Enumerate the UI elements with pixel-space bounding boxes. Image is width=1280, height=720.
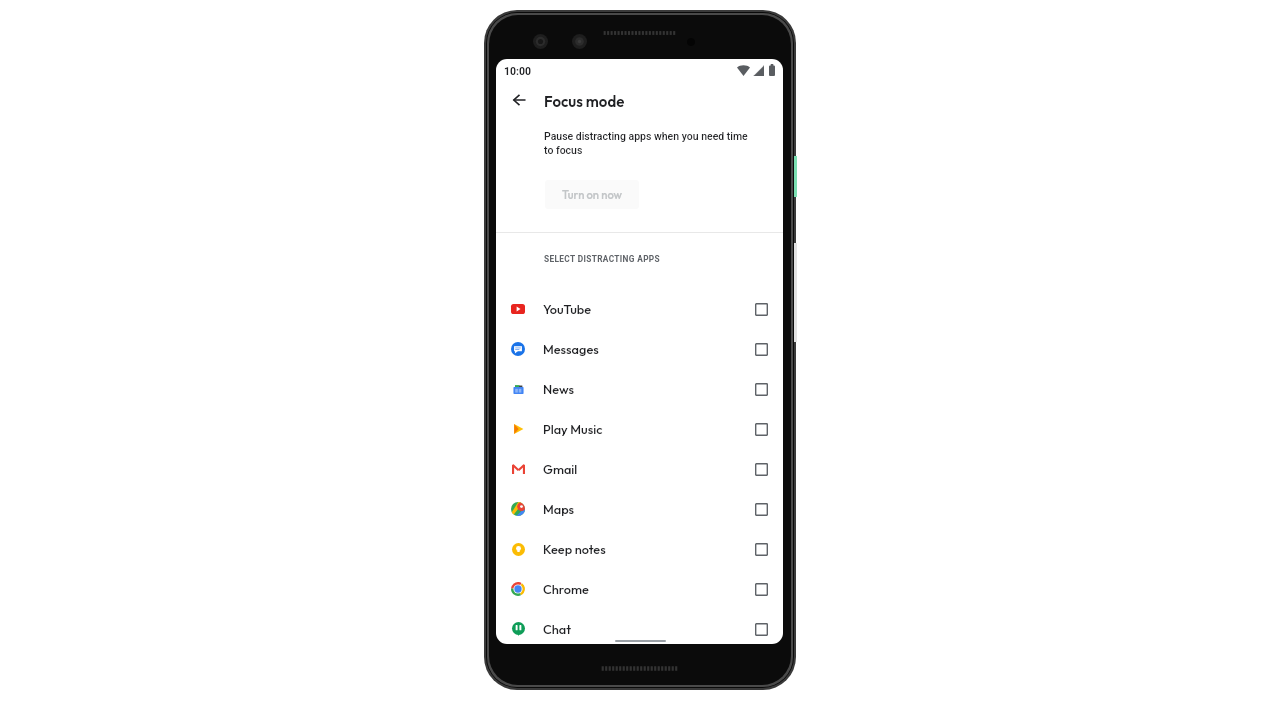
staticText: Messages (543, 341, 599, 357)
button[interactable]: Chrome (496, 569, 783, 609)
button[interactable]: Maps (496, 489, 783, 529)
staticText: Turn on now (562, 188, 623, 202)
staticText: Chat (543, 621, 572, 637)
staticText: Keep notes (543, 541, 606, 557)
button[interactable]: Back (505, 86, 533, 114)
staticText: Play Music (543, 421, 603, 437)
button[interactable]: Chat (496, 609, 783, 644)
staticText: 10:00 (504, 65, 532, 77)
button[interactable]: Play Music (496, 409, 783, 449)
staticText: Maps (543, 501, 575, 517)
button[interactable]: Gmail (496, 449, 783, 489)
staticText: News (543, 381, 574, 397)
button[interactable]: Turn on now (545, 180, 639, 209)
button[interactable]: News (496, 369, 783, 409)
staticText: Focus mode (544, 92, 625, 111)
button[interactable]: Messages (496, 329, 783, 369)
staticText: Gmail (543, 461, 578, 477)
staticText: SELECT DISTRACTING APPS (544, 254, 660, 264)
button[interactable]: Keep notes (496, 529, 783, 569)
staticText: YouTube (543, 301, 592, 317)
staticText: Chrome (543, 581, 589, 597)
staticText: Pause distracting apps when you need tim… (544, 130, 754, 156)
button[interactable]: YouTube (496, 289, 783, 329)
